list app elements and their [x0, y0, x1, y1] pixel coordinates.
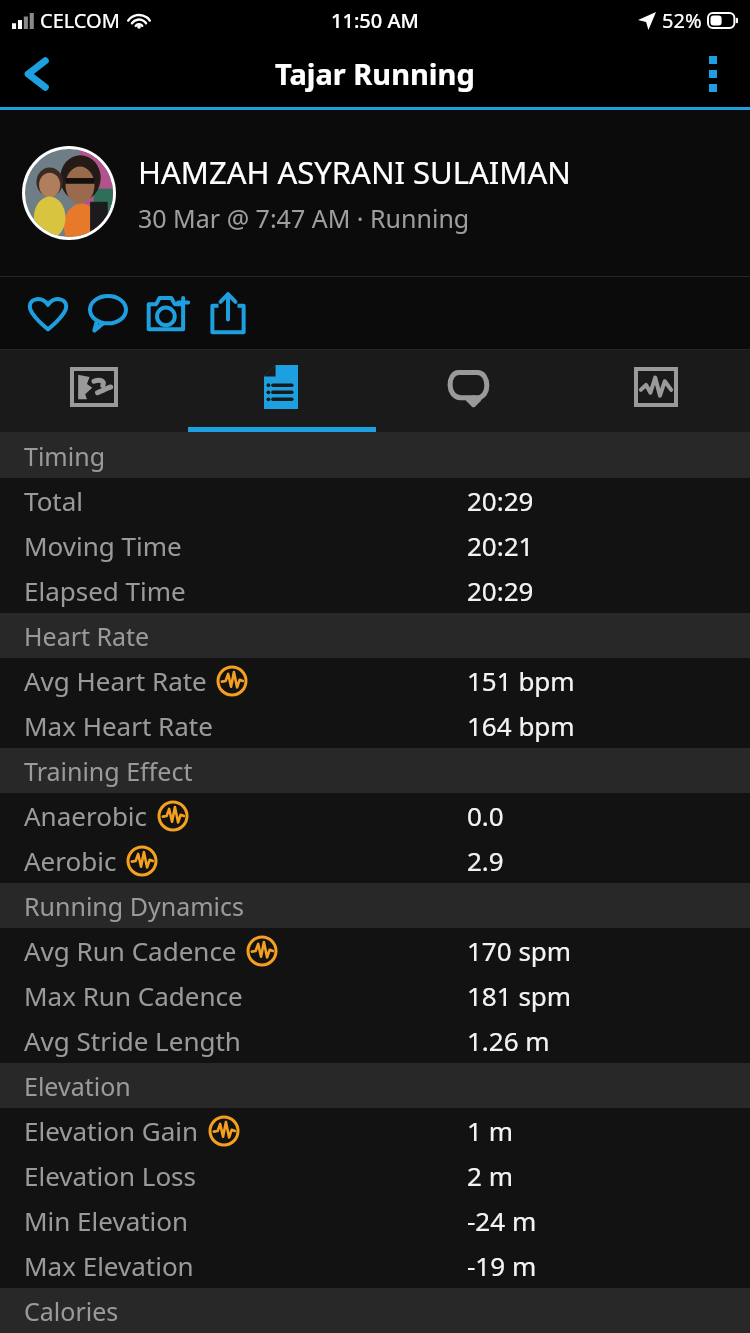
staticText: 1.26 m [467, 1023, 550, 1058]
staticText: Tajar Running [275, 54, 475, 93]
staticText: 30 Mar @ 7:47 AM · Running [138, 201, 470, 235]
staticText: -19 m [467, 1248, 537, 1283]
button[interactable]: HAMZAH ASYRANI SULAIMAN [0, 110, 750, 276]
button[interactable]: Details [187, 350, 374, 432]
button[interactable]: Comment [78, 283, 138, 343]
staticText: Elapsed Time [24, 573, 186, 608]
staticText: 181 spm [467, 978, 572, 1013]
button[interactable]: Avg Stride Length [0, 1018, 750, 1063]
staticText: Elevation Loss [24, 1158, 197, 1193]
button[interactable]: Map [0, 350, 187, 432]
staticText: Timing [24, 439, 106, 473]
button[interactable]: Total [0, 478, 750, 523]
button[interactable]: Like [18, 283, 78, 343]
staticText: Running Dynamics [24, 889, 244, 923]
button[interactable]: Min Elevation [0, 1198, 750, 1243]
staticText: Elevation [24, 1069, 131, 1103]
button[interactable]: Share [198, 283, 258, 343]
staticText: Heart Rate [24, 619, 150, 653]
staticText: HAMZAH ASYRANI SULAIMAN [138, 151, 571, 193]
staticText: 52% [662, 7, 702, 34]
button[interactable]: Avg Run Cadence [0, 928, 750, 973]
button[interactable]: Elapsed Time [0, 568, 750, 613]
staticText: 2.9 [467, 843, 504, 878]
staticText: Elevation Gain [24, 1113, 199, 1148]
staticText: Anaerobic [24, 798, 148, 833]
staticText: 20:29 [467, 573, 534, 608]
button[interactable]: Aerobic [0, 838, 750, 883]
button[interactable]: Elevation Loss [0, 1153, 750, 1198]
button[interactable]: Elevation Gain [0, 1108, 750, 1153]
staticText: 1 m [467, 1113, 513, 1148]
button[interactable]: Max Run Cadence [0, 973, 750, 1018]
staticText: Avg Heart Rate [24, 663, 207, 698]
staticText: Min Elevation [24, 1203, 189, 1238]
staticText: 20:21 [467, 528, 534, 563]
button[interactable]: Charts [562, 350, 750, 432]
button[interactable]: Back [0, 40, 74, 107]
button[interactable]: More options [676, 40, 750, 107]
staticText: 151 bpm [467, 663, 575, 698]
button[interactable]: Moving Time [0, 523, 750, 568]
staticText: Max Run Cadence [24, 978, 243, 1013]
staticText: CELCOM [40, 7, 120, 34]
staticText: Training Effect [24, 754, 193, 788]
button[interactable]: Add photo [138, 283, 198, 343]
staticText: Moving Time [24, 528, 182, 563]
staticText: 11:50 AM [331, 7, 419, 34]
staticText: Calories [24, 1294, 119, 1328]
staticText: 20:29 [467, 483, 534, 518]
staticText: Avg Run Cadence [24, 933, 237, 968]
staticText: Aerobic [24, 843, 117, 878]
staticText: 2 m [467, 1158, 513, 1193]
staticText: Total [24, 483, 84, 518]
button[interactable]: Laps [374, 350, 562, 432]
button[interactable]: Avg Heart Rate [0, 658, 750, 703]
button[interactable]: Anaerobic [0, 793, 750, 838]
staticText: 170 spm [467, 933, 572, 968]
button[interactable]: Max Elevation [0, 1243, 750, 1288]
staticText: -24 m [467, 1203, 537, 1238]
staticText: Avg Stride Length [24, 1023, 241, 1058]
staticText: 0.0 [467, 798, 504, 833]
staticText: Max Elevation [24, 1248, 194, 1283]
staticText: 164 bpm [467, 708, 575, 743]
button[interactable]: Max Heart Rate [0, 703, 750, 748]
staticText: Max Heart Rate [24, 708, 213, 743]
